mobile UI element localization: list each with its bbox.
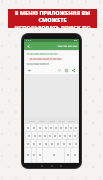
button[interactable] bbox=[37, 124, 42, 131]
button[interactable] bbox=[54, 124, 58, 131]
button[interactable] bbox=[25, 148, 31, 162]
button[interactable] bbox=[32, 132, 37, 139]
button[interactable] bbox=[64, 124, 68, 131]
staticText: ИСПОЛЬЗОВАТЬ ПОИСК ПО ДВУМ ЯЗЫКАМ bbox=[8, 24, 97, 28]
button[interactable] bbox=[74, 124, 78, 131]
button[interactable] bbox=[55, 140, 60, 147]
button[interactable] bbox=[73, 132, 77, 139]
button[interactable] bbox=[26, 132, 31, 139]
button[interactable] bbox=[63, 132, 67, 139]
button[interactable] bbox=[37, 148, 42, 162]
button[interactable] bbox=[49, 124, 53, 131]
button[interactable]: Play pronunciation bbox=[25, 51, 78, 74]
button[interactable]: Play pronunciation bbox=[27, 68, 31, 72]
button[interactable] bbox=[49, 140, 54, 147]
button[interactable] bbox=[68, 132, 72, 139]
button[interactable] bbox=[58, 132, 62, 139]
button[interactable] bbox=[32, 148, 36, 162]
button[interactable] bbox=[31, 124, 36, 131]
button[interactable] bbox=[25, 124, 30, 131]
button[interactable] bbox=[43, 124, 48, 131]
button[interactable]: Back bbox=[26, 44, 30, 48]
button[interactable] bbox=[43, 148, 64, 162]
button[interactable]: Favorite bbox=[57, 68, 61, 72]
button[interactable] bbox=[31, 140, 36, 147]
button[interactable]: Share bbox=[71, 68, 75, 72]
button[interactable] bbox=[25, 140, 30, 147]
button[interactable] bbox=[59, 124, 63, 131]
button[interactable] bbox=[48, 132, 52, 139]
button[interactable] bbox=[71, 148, 78, 162]
button[interactable]: Copy bbox=[64, 68, 68, 72]
button[interactable] bbox=[61, 140, 66, 147]
button[interactable] bbox=[67, 140, 72, 147]
button[interactable] bbox=[53, 132, 57, 139]
button[interactable] bbox=[37, 140, 42, 147]
button[interactable]: Search query bbox=[59, 44, 77, 48]
button[interactable] bbox=[73, 140, 78, 147]
button[interactable] bbox=[69, 124, 73, 131]
staticText: В МЕНЮ ПРИЛОЖЕНИЯ ВЫ СМОЖЕТЕ bbox=[8, 9, 97, 23]
button[interactable] bbox=[65, 148, 70, 162]
button[interactable] bbox=[38, 132, 42, 139]
button[interactable] bbox=[43, 132, 47, 139]
button[interactable] bbox=[43, 140, 48, 147]
